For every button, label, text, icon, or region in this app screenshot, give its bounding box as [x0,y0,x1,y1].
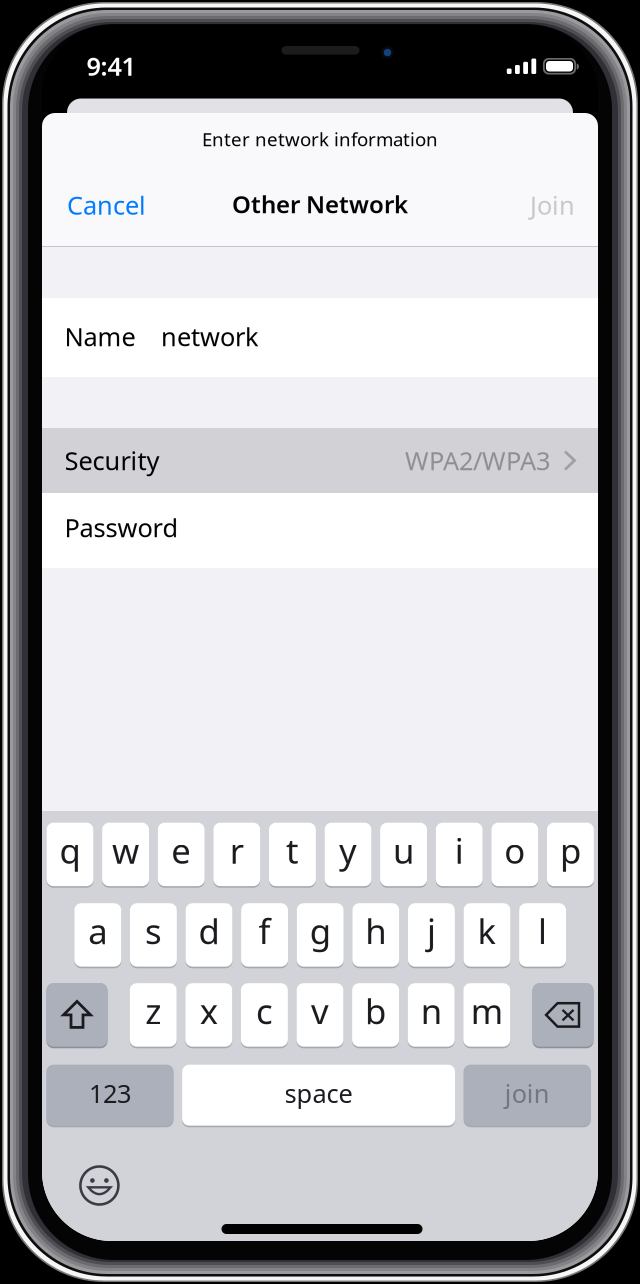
staticText: w [112,827,139,873]
staticText: 9:41 [86,49,135,83]
staticText: j [427,908,436,954]
staticText: l [538,908,547,954]
button[interactable]: e [158,822,205,887]
button[interactable]: 123 [46,1064,173,1127]
button[interactable]: Shift [46,982,107,1048]
button[interactable]: Password [42,493,598,568]
button[interactable]: l [519,902,566,968]
button[interactable]: k [463,902,510,968]
staticText: o [504,827,525,873]
staticText: c [256,988,273,1034]
staticText: y [339,827,357,873]
staticText: join [505,1076,550,1110]
button[interactable]: i [436,822,483,887]
button[interactable]: Delete [532,982,593,1048]
staticText: s [145,908,162,954]
staticText: v [311,988,329,1034]
staticText: f [259,908,271,954]
button[interactable]: s [130,902,177,968]
staticText: r [230,827,244,873]
button[interactable]: Name [42,298,598,377]
button[interactable]: q [46,822,93,887]
button[interactable]: a [74,902,121,968]
button[interactable]: g [297,902,344,968]
button[interactable]: c [241,982,288,1048]
staticText: b [365,988,386,1034]
staticText: d [198,908,219,954]
staticText: network [161,320,259,353]
button[interactable]: space [182,1064,455,1127]
staticText: Password [64,511,178,544]
button[interactable]: b [352,982,399,1048]
staticText: z [145,988,161,1034]
button[interactable]: d [185,902,232,968]
staticText: Security [64,444,159,477]
button[interactable]: y [324,822,371,887]
button[interactable]: f [241,902,288,968]
staticText: Name [64,320,135,353]
staticText: m [471,988,503,1034]
button[interactable]: p [547,822,594,887]
button[interactable]: t [269,822,316,887]
staticText: space [285,1076,353,1110]
staticText: Join [530,188,575,222]
button[interactable]: n [408,982,455,1048]
button[interactable]: z [130,982,177,1048]
button[interactable]: Cancel [67,179,197,231]
staticText: Cancel [67,188,146,222]
staticText: p [560,827,581,873]
button[interactable]: Security [42,428,598,493]
staticText: x [200,988,218,1034]
button[interactable]: j [408,902,455,968]
staticText: k [477,908,496,954]
button[interactable]: w [102,822,149,887]
staticText: g [310,908,331,954]
staticText: i [455,827,464,873]
staticText: e [171,827,191,873]
staticText: a [88,908,107,954]
button[interactable]: x [185,982,232,1048]
button[interactable]: Join [455,179,575,231]
button[interactable]: join [464,1064,591,1127]
button[interactable]: r [213,822,260,887]
staticText: q [59,827,80,873]
button[interactable]: m [463,982,510,1048]
staticText: u [393,827,414,873]
staticText: Other Network [232,188,408,220]
button[interactable]: Emoji keyboard [78,1164,120,1206]
staticText: Enter network information [202,127,438,151]
button[interactable]: o [491,822,538,887]
staticText: n [421,988,442,1034]
button[interactable]: v [296,982,343,1048]
button[interactable]: u [380,822,427,887]
staticText: h [365,908,386,954]
button[interactable]: h [352,902,399,968]
staticText: WPA2/WPA3 [405,444,550,477]
staticText: 123 [89,1076,131,1110]
staticText: t [286,827,299,873]
